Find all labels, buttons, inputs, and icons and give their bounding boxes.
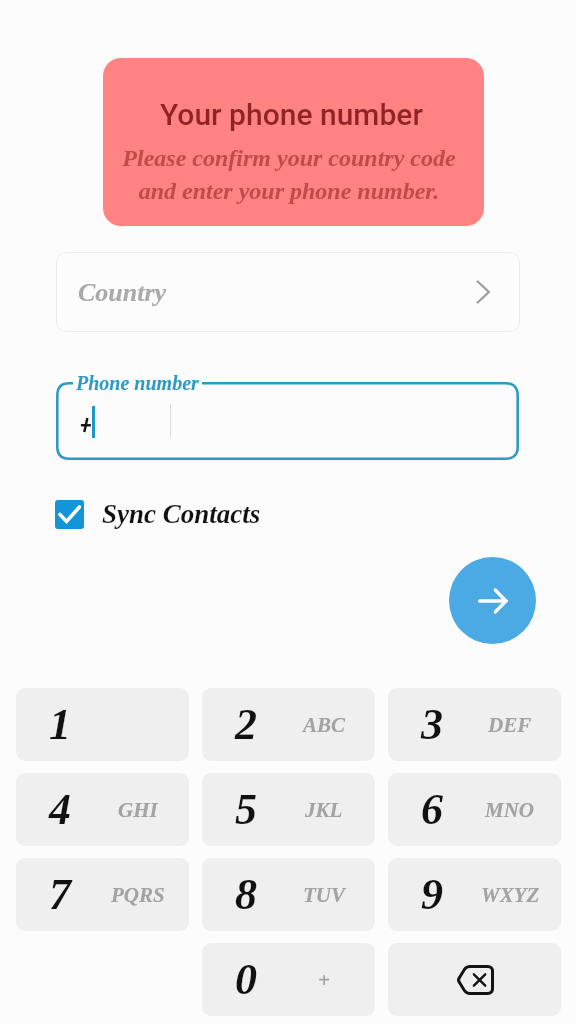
other: Select country (476, 280, 490, 304)
staticText: Your phone number (160, 97, 423, 132)
button[interactable]: 1 (16, 688, 189, 761)
staticText: 2 (235, 700, 257, 749)
staticText: 0 (235, 955, 257, 1004)
staticText: 5 (235, 785, 257, 834)
staticText: ABC (303, 713, 346, 736)
button[interactable]: 9 (388, 858, 561, 931)
button[interactable]: Next (449, 557, 536, 644)
staticText: + (318, 968, 330, 991)
button[interactable]: Country (56, 252, 520, 332)
button[interactable]: 2 (202, 688, 375, 761)
button[interactable]: 7 (16, 858, 189, 931)
staticText: Sync Contacts (102, 499, 261, 529)
staticText: PQRS (111, 883, 165, 906)
staticText: 4 (49, 785, 71, 834)
staticText: MNO (485, 798, 535, 821)
staticText: Country (78, 278, 167, 307)
button[interactable]: Sync Contacts (55, 499, 261, 529)
staticText: 1 (49, 700, 71, 749)
staticText: 6 (421, 785, 443, 834)
staticText: JKL (305, 798, 343, 821)
staticText: 7 (49, 870, 71, 919)
staticText: 3 (421, 700, 443, 749)
staticText: Phone number (76, 372, 199, 394)
staticText: Please confirm your country code and ent… (122, 145, 456, 204)
button[interactable]: Backspace (388, 943, 561, 1016)
button[interactable]: 3 (388, 688, 561, 761)
staticText: WXYZ (481, 883, 540, 906)
staticText: GHI (118, 798, 158, 821)
staticText: 9 (421, 870, 443, 919)
button[interactable]: 0 (202, 943, 375, 1016)
staticText: DEF (488, 713, 532, 736)
button[interactable]: 6 (388, 773, 561, 846)
button[interactable]: 8 (202, 858, 375, 931)
button[interactable]: 4 (16, 773, 189, 846)
staticText: TUV (303, 883, 345, 906)
button[interactable]: 5 (202, 773, 375, 846)
staticText: 8 (235, 870, 257, 919)
